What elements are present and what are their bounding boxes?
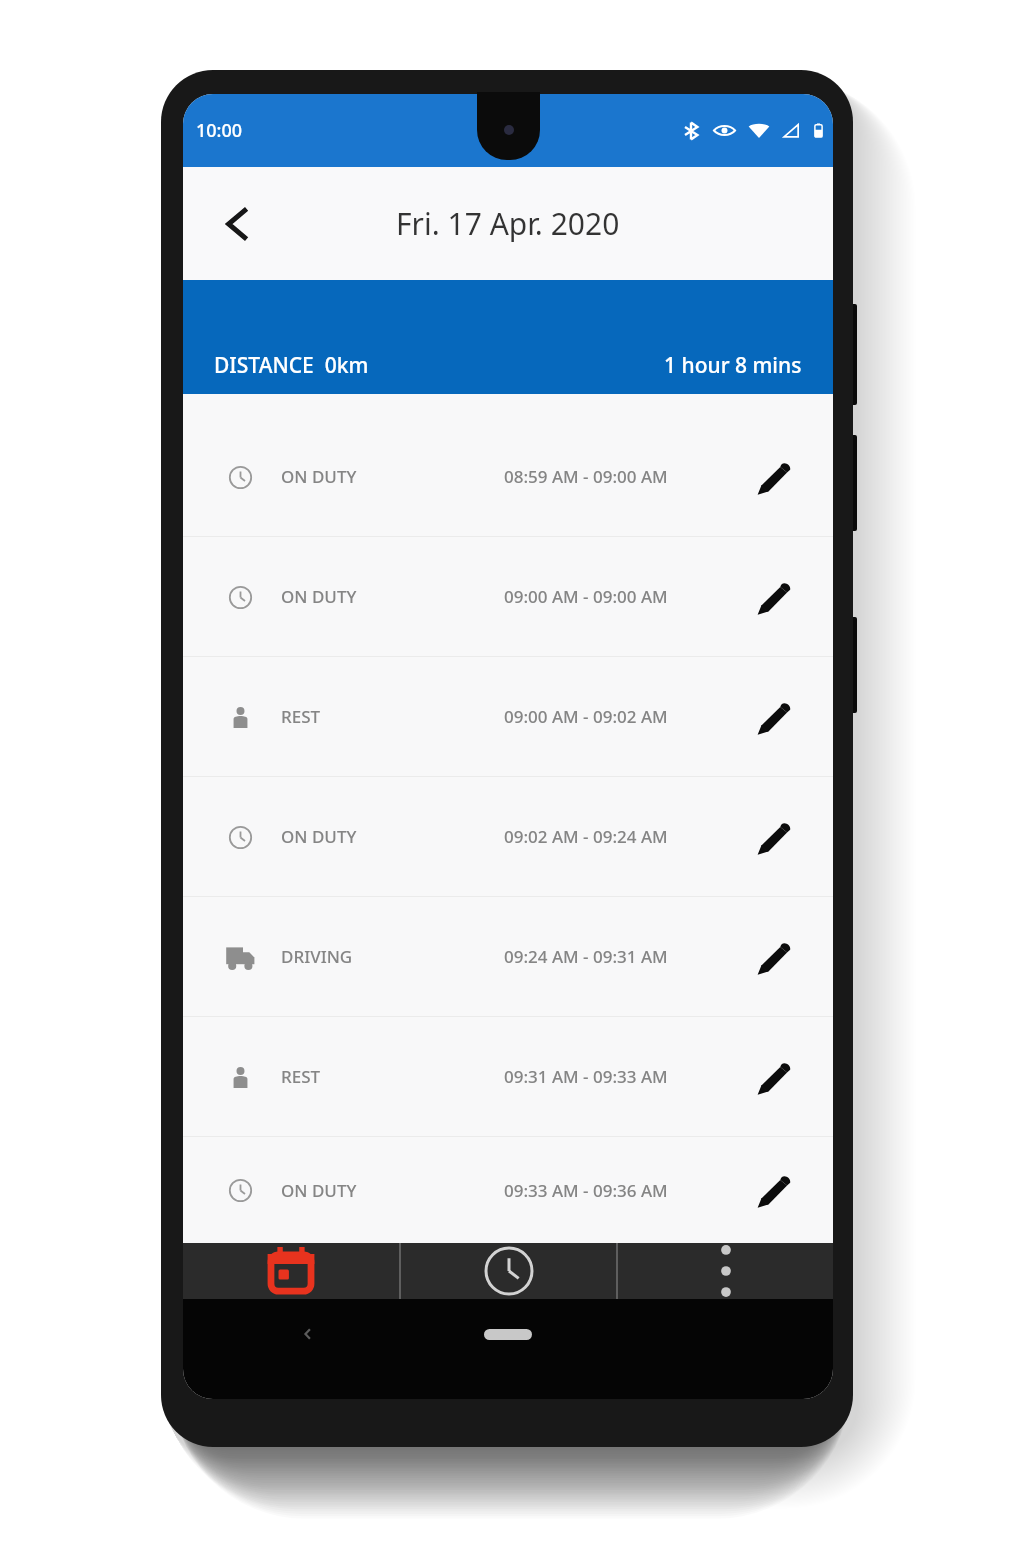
button[interactable]: Edit [737, 1017, 833, 1136]
button[interactable]: ON DUTY [183, 537, 833, 656]
staticText: 09:33 AM - 09:36 AM [504, 1179, 668, 1202]
staticText: DISTANCE 0km [214, 351, 369, 380]
button[interactable]: Edit [737, 1137, 833, 1243]
staticText: 10:00 [196, 118, 243, 143]
button[interactable]: ON DUTY [183, 1137, 833, 1243]
staticText: DRIVING [281, 945, 353, 968]
button[interactable]: ON DUTY [183, 417, 833, 536]
button[interactable]: REST [183, 657, 833, 776]
button[interactable]: DRIVING [183, 897, 833, 1016]
staticText: 09:02 AM - 09:24 AM [504, 825, 668, 848]
staticText: 09:31 AM - 09:33 AM [504, 1065, 668, 1088]
button[interactable]: Home [484, 1329, 532, 1340]
staticText: ON DUTY [281, 465, 357, 488]
button[interactable]: Edit [737, 897, 833, 1016]
staticText: ON DUTY [281, 1179, 357, 1202]
button[interactable]: Hours [401, 1243, 616, 1299]
staticText: REST [281, 1065, 321, 1088]
button[interactable]: Back [295, 1321, 321, 1347]
button[interactable]: Edit [737, 417, 833, 536]
staticText: ON DUTY [281, 585, 357, 608]
staticText: 09:00 AM - 09:02 AM [504, 705, 668, 728]
button[interactable]: Edit [737, 777, 833, 896]
staticText: 09:00 AM - 09:00 AM [504, 585, 668, 608]
button[interactable]: Calendar [183, 1243, 399, 1299]
button[interactable]: REST [183, 1017, 833, 1136]
staticText: 1 hour 8 mins [664, 351, 802, 380]
staticText: REST [281, 705, 321, 728]
staticText: 08:59 AM - 09:00 AM [504, 465, 668, 488]
button[interactable]: Back [213, 200, 261, 248]
button[interactable]: Edit [737, 657, 833, 776]
staticText: Fri. 17 Apr. 2020 [396, 203, 620, 244]
staticText: 09:24 AM - 09:31 AM [504, 945, 668, 968]
button[interactable]: Edit [737, 537, 833, 656]
button[interactable]: More options [618, 1243, 833, 1299]
staticText: ON DUTY [281, 825, 357, 848]
button[interactable]: ON DUTY [183, 777, 833, 896]
